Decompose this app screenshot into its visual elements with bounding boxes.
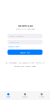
staticText: Email address: [10, 35, 24, 37]
button[interactable]: Home: [0, 91, 17, 100]
staticText: Profile: [39, 96, 44, 98]
staticText: Service and Privacy Policy: [14, 65, 36, 68]
button[interactable]: Explore: [17, 91, 33, 100]
staticText: By continuing, you agree to our Terms of: [5, 61, 44, 64]
staticText: Sign In: [20, 51, 30, 54]
staticText: Password: [10, 41, 19, 43]
staticText: Explore: [22, 96, 28, 98]
staticText: Home: [6, 96, 10, 98]
button[interactable]: Sign In: [7, 50, 42, 55]
staticText: Sign in to continue: [15, 27, 34, 30]
staticText: Forgot password?: [7, 46, 18, 48]
button[interactable]: Profile: [33, 91, 50, 100]
staticText: Welcome Back: [17, 24, 32, 27]
button[interactable]: Forgot password?: [7, 46, 18, 48]
